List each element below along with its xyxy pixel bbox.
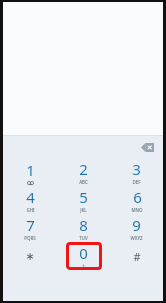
- staticText: 6: [133, 187, 142, 207]
- button[interactable]: Backspace: [136, 138, 158, 156]
- button[interactable]: 7: [3, 214, 57, 242]
- staticText: #: [133, 249, 141, 264]
- button[interactable]: #: [110, 242, 163, 270]
- staticText: MNO: [131, 207, 143, 213]
- staticText: JKL: [80, 207, 87, 213]
- staticText: TUV: [79, 235, 88, 241]
- button[interactable]: 0: [57, 242, 110, 270]
- staticText: 8: [79, 215, 88, 235]
- button[interactable]: 8: [57, 214, 110, 242]
- staticText: GHI: [26, 207, 35, 213]
- button[interactable]: ∗: [3, 242, 57, 270]
- button[interactable]: 9: [110, 214, 163, 242]
- button[interactable]: 1: [3, 158, 57, 186]
- button[interactable]: 2: [57, 158, 110, 186]
- staticText: 7: [26, 215, 35, 235]
- button[interactable]: 6: [110, 186, 163, 214]
- staticText: 9: [132, 215, 141, 235]
- staticText: 5: [79, 187, 88, 207]
- staticText: 3: [132, 159, 141, 179]
- staticText: +: [82, 263, 85, 269]
- staticText: 2: [79, 159, 88, 179]
- button[interactable]: 3: [110, 158, 163, 186]
- staticText: 1: [26, 160, 35, 180]
- button[interactable]: 4: [3, 186, 57, 214]
- staticText: 0: [79, 243, 88, 263]
- button[interactable]: 5: [57, 186, 110, 214]
- staticText: ABC: [79, 179, 88, 185]
- staticText: PQRS: [24, 235, 36, 241]
- staticText: 4: [26, 187, 35, 207]
- staticText: ∗: [25, 250, 35, 263]
- staticText: WXYZ: [130, 235, 143, 241]
- staticText: DEF: [132, 179, 141, 185]
